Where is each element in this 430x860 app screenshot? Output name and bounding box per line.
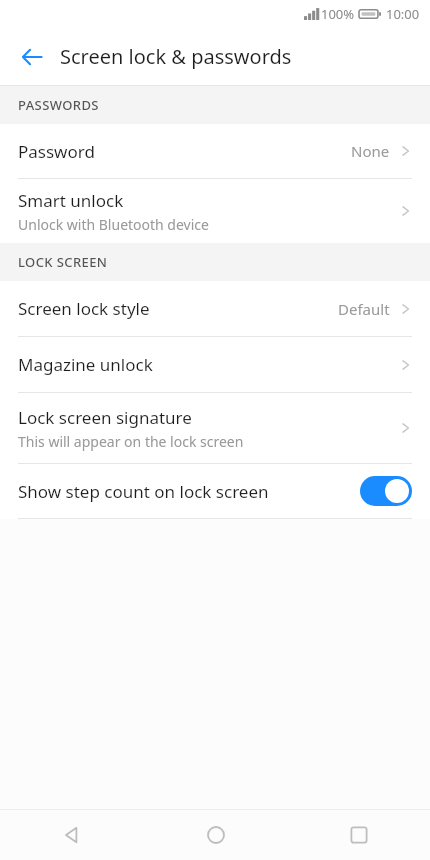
button[interactable]: Password bbox=[0, 124, 430, 179]
button[interactable]: Screen lock style bbox=[0, 281, 430, 337]
staticText: LOCK SCREEN bbox=[18, 253, 108, 271]
button[interactable]: Back bbox=[8, 33, 56, 81]
button[interactable]: Back bbox=[0, 810, 144, 860]
button[interactable]: Magazine unlock bbox=[0, 337, 430, 393]
staticText: PASSWORDS bbox=[18, 96, 99, 114]
button[interactable]: Show step count on lock screen bbox=[0, 464, 430, 518]
staticText: Default bbox=[338, 299, 390, 319]
staticText: Password bbox=[18, 140, 95, 163]
staticText: Screen lock style bbox=[18, 297, 150, 320]
staticText: This will appear on the lock screen bbox=[18, 432, 244, 451]
staticText: Unlock with Bluetooth device bbox=[18, 215, 209, 234]
staticText: Smart unlock bbox=[18, 189, 124, 212]
button[interactable]: Home bbox=[144, 810, 287, 860]
staticText: None bbox=[351, 141, 390, 161]
staticText: 10:00 bbox=[386, 5, 420, 23]
button[interactable]: Smart unlock bbox=[0, 179, 430, 243]
staticText: Screen lock & passwords bbox=[60, 43, 292, 70]
button[interactable]: Lock screen signature bbox=[0, 393, 430, 464]
staticText: Lock screen signature bbox=[18, 406, 192, 429]
staticText: Show step count on lock screen bbox=[18, 480, 360, 503]
staticText: Magazine unlock bbox=[18, 353, 153, 376]
staticText: 100% bbox=[321, 5, 355, 23]
button[interactable]: Recents bbox=[287, 810, 430, 860]
